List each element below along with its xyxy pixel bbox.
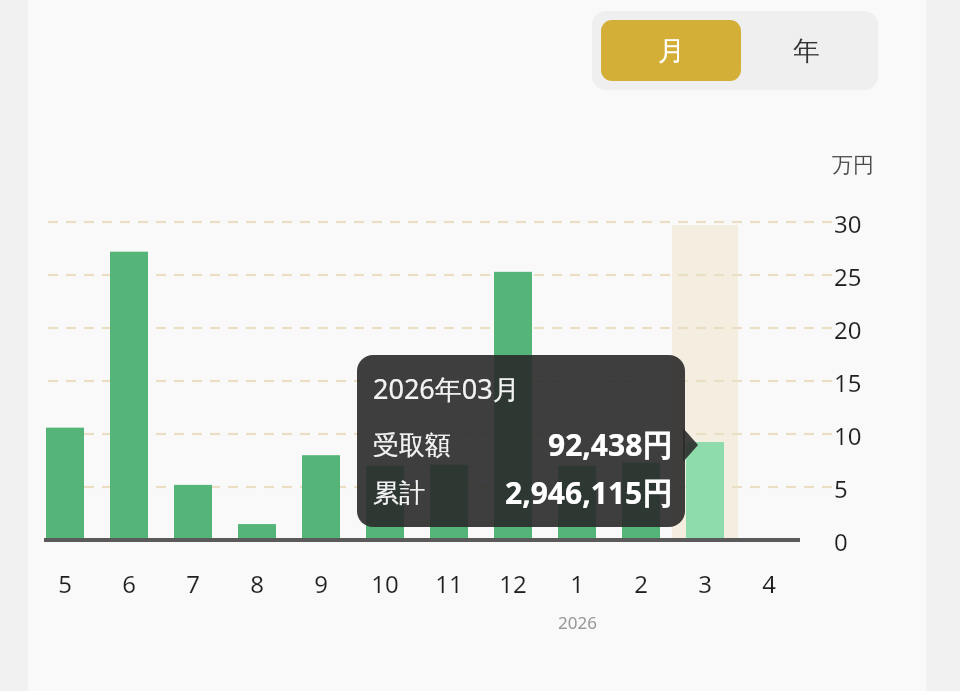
staticText: 3 [698, 567, 712, 599]
staticText: 8 [250, 567, 264, 599]
staticText: 2 [634, 567, 648, 599]
staticText: 4 [762, 567, 776, 599]
staticText: 11 [435, 567, 463, 599]
staticText: 0 [834, 525, 848, 555]
staticText: 1 [570, 567, 584, 599]
staticText: 累計 [373, 477, 425, 510]
staticText: 10 [371, 567, 399, 599]
staticText: 年 [793, 34, 820, 68]
staticText: 9 [314, 567, 328, 599]
staticText: 7 [186, 567, 200, 599]
staticText: 20 [834, 313, 862, 343]
staticText: 15 [834, 366, 862, 396]
button[interactable]: 月 [601, 20, 741, 81]
staticText: 25 [834, 260, 862, 290]
button[interactable]: 年 [741, 20, 871, 81]
staticText: 受取額 [373, 429, 451, 462]
staticText: 10 [834, 419, 862, 449]
staticText: 2026 [558, 611, 597, 634]
staticText: 5 [58, 567, 72, 599]
staticText: 6 [122, 567, 136, 599]
staticText: 5 [834, 472, 848, 502]
staticText: 30 [834, 207, 862, 237]
staticText: 万円 [832, 152, 874, 178]
staticText: 12 [499, 567, 527, 599]
staticText: 2,946,115円 [505, 472, 673, 513]
staticText: 92,438円 [548, 424, 673, 465]
staticText: 2026年03月 [373, 370, 520, 407]
button[interactable]: Monthly earnings bar chart [0, 0, 960, 691]
staticText: 月 [658, 34, 685, 68]
